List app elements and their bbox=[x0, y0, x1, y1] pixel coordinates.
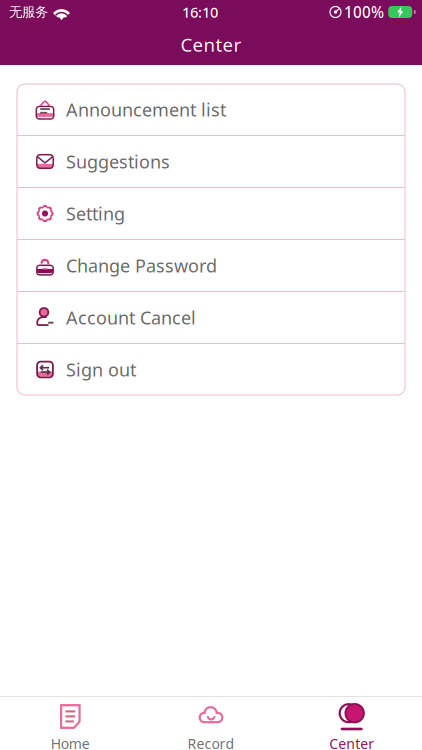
staticText: Center bbox=[329, 734, 374, 750]
staticText: Home bbox=[51, 734, 90, 750]
button[interactable]: Center bbox=[281, 697, 422, 750]
staticText: Suggestions bbox=[66, 149, 170, 174]
staticText: 100% bbox=[344, 2, 384, 22]
button[interactable]: Account Cancel bbox=[17, 292, 405, 343]
staticText: 16:10 bbox=[182, 2, 218, 22]
button[interactable]: Announcement list bbox=[17, 84, 405, 135]
button[interactable]: Sign out bbox=[17, 344, 405, 395]
staticText: Setting bbox=[66, 201, 125, 226]
staticText: 无服务 bbox=[9, 4, 48, 20]
button[interactable]: Change Password bbox=[17, 240, 405, 291]
staticText: Announcement list bbox=[66, 97, 226, 122]
button[interactable]: Setting bbox=[17, 188, 405, 239]
staticText: Record bbox=[187, 734, 234, 750]
staticText: Account Cancel bbox=[66, 305, 196, 330]
staticText: Change Password bbox=[66, 253, 217, 278]
staticText: Sign out bbox=[66, 357, 136, 382]
button[interactable]: Home bbox=[0, 697, 141, 750]
button[interactable]: Record bbox=[141, 697, 281, 750]
button[interactable]: Suggestions bbox=[17, 136, 405, 187]
staticText: Center bbox=[180, 32, 241, 57]
